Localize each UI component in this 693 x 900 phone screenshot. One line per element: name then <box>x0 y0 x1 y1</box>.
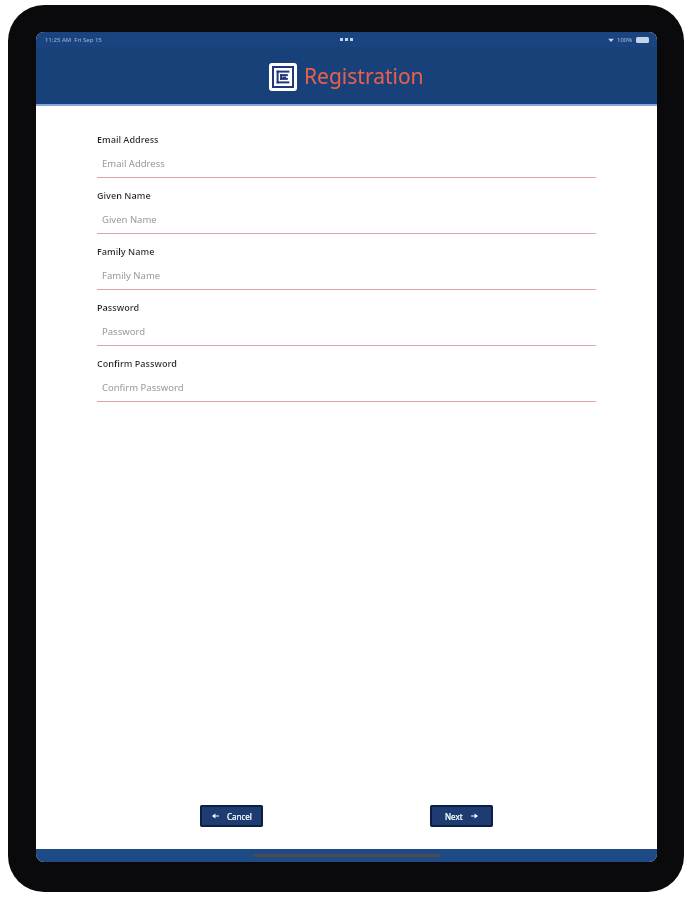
button[interactable]: Family Name <box>97 245 596 301</box>
staticText: Confirm Password <box>97 357 177 369</box>
button[interactable]: Next <box>430 805 493 827</box>
other: Back <box>212 812 220 820</box>
button[interactable]: Email Address <box>97 133 596 189</box>
staticText: 11:25 AM Fri Sep 15 <box>45 36 102 44</box>
staticText: Confirm Password <box>102 381 184 394</box>
staticText: Next <box>445 811 463 822</box>
staticText: Password <box>97 301 140 313</box>
other: Forward <box>470 812 478 820</box>
staticText: Email Address <box>102 157 165 170</box>
staticText: Cancel <box>227 811 252 822</box>
button[interactable]: Given Name <box>97 189 596 245</box>
button[interactable]: Password <box>97 301 596 357</box>
staticText: Family Name <box>102 269 161 282</box>
staticText: 100% <box>617 36 633 44</box>
staticText: Given Name <box>97 189 151 201</box>
staticText: Given Name <box>102 213 157 226</box>
button[interactable]: Back <box>200 805 263 827</box>
staticText: Password <box>102 325 145 338</box>
staticText: Family Name <box>97 245 155 257</box>
button[interactable]: Confirm Password <box>97 357 596 413</box>
staticText: Registration <box>304 62 424 91</box>
staticText: Email Address <box>97 133 159 145</box>
